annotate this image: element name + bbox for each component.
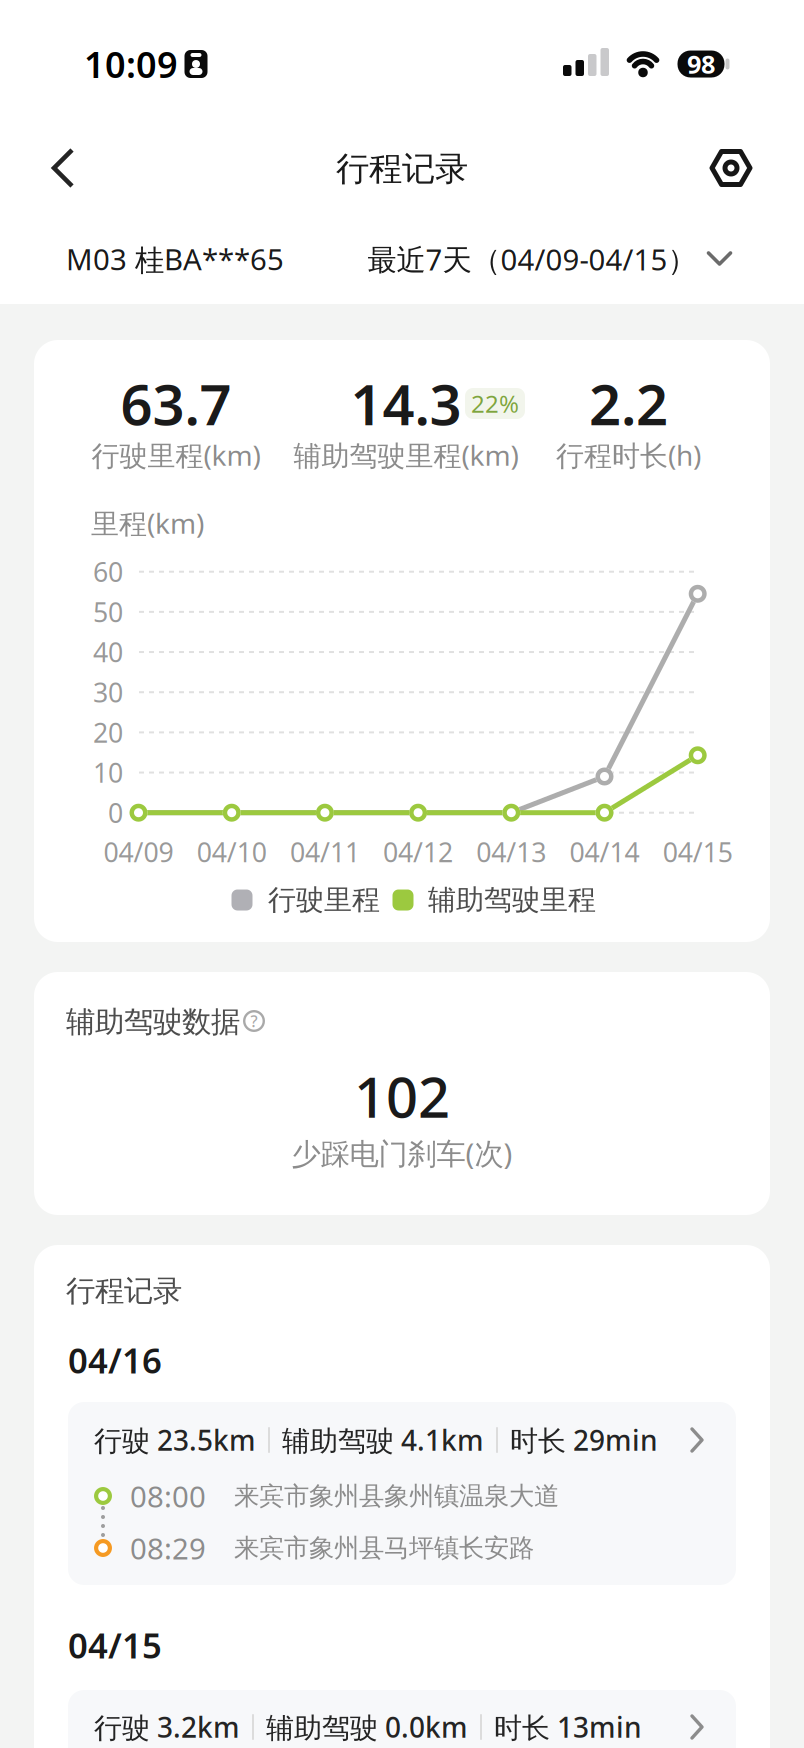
button[interactable]: 行驶 3.2km [68, 1690, 736, 1748]
staticText: ? [250, 1010, 257, 1032]
staticText: 04/12 [383, 834, 453, 870]
staticText: 10:09 [84, 40, 178, 88]
staticText: 63.7 [120, 366, 231, 441]
staticText: M03 桂BA***65 [66, 239, 284, 278]
staticText: 行程时长(h) [556, 436, 701, 474]
staticText: 08:29 [130, 1528, 206, 1567]
staticText: 08:00 [130, 1476, 206, 1515]
staticText: 04/11 [290, 834, 360, 870]
staticText: 行驶里程 [268, 883, 380, 917]
staticText: 04/10 [197, 834, 267, 870]
staticText: 辅助驾驶 0.0km [266, 1708, 468, 1746]
staticText: 2.2 [589, 366, 668, 441]
staticText: 102 [354, 1059, 450, 1133]
staticText: 0 [108, 795, 123, 830]
staticText: 辅助驾驶数据 [66, 1004, 240, 1040]
staticText: 10 [93, 755, 123, 790]
staticText: 04/09 [103, 834, 173, 870]
staticText: 04/13 [476, 834, 546, 870]
staticText: 22% [471, 388, 519, 419]
staticText: 04/16 [68, 1337, 162, 1383]
staticText: 来宾市象州县象州镇温泉大道 [234, 1480, 559, 1511]
staticText: 时长 13min [494, 1708, 642, 1746]
button[interactable]: M03 桂BA***65 [66, 239, 366, 278]
staticText: 60 [93, 554, 123, 589]
staticText: 04/14 [569, 834, 639, 870]
button[interactable]: Back [40, 146, 84, 190]
staticText: 30 [93, 674, 123, 710]
staticText: 行驶 3.2km [94, 1708, 240, 1746]
staticText: 14.3 [350, 366, 461, 441]
staticText: 辅助驾驶里程 [428, 883, 596, 917]
staticText: 行驶 23.5km [94, 1421, 256, 1459]
staticText: 98 [687, 47, 715, 81]
staticText: 20 [93, 715, 123, 750]
staticText: 来宾市象州县马坪镇长安路 [234, 1532, 534, 1563]
staticText: 里程(km) [91, 504, 204, 542]
staticText: 辅助驾驶 4.1km [282, 1421, 484, 1459]
staticText: 行驶里程(km) [91, 436, 260, 474]
staticText: 辅助驾驶里程(km) [293, 436, 518, 474]
staticText: 行程记录 [66, 1273, 182, 1309]
button[interactable]: 最近7天（04/09-04/15） [367, 239, 732, 278]
staticText: 04/15 [663, 834, 733, 870]
staticText: 50 [93, 594, 123, 630]
button[interactable]: 行驶 23.5km [68, 1402, 736, 1585]
staticText: 行程记录 [336, 148, 468, 189]
staticText: 少踩电门刹车(次) [291, 1133, 512, 1172]
staticText: 最近7天（04/09-04/15） [367, 239, 696, 278]
staticText: 04/15 [68, 1622, 162, 1668]
staticText: 40 [93, 634, 123, 670]
button[interactable]: Help [243, 1010, 265, 1032]
button[interactable]: Settings [707, 144, 755, 192]
staticText: 时长 29min [510, 1421, 658, 1459]
